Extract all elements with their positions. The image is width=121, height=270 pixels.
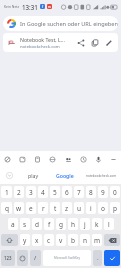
- staticText: Google: [56, 172, 74, 179]
- staticText: e: [29, 204, 33, 213]
- button[interactable]: Shift: [1, 234, 18, 246]
- button[interactable]: k: [92, 218, 102, 230]
- button[interactable]: notebookcheck.com: [81, 167, 121, 184]
- staticText: t: [54, 204, 57, 213]
- staticText: /: [34, 254, 37, 262]
- staticText: play: [28, 172, 39, 179]
- button[interactable]: Numbers: [1, 250, 15, 266]
- button[interactable]: Space: [43, 250, 91, 266]
- staticText: f: [42, 5, 44, 9]
- staticText: 8: [89, 188, 93, 197]
- staticText: a: [11, 220, 15, 229]
- staticText: z: [65, 204, 69, 213]
- staticText: Notebook Test, L...: [20, 36, 65, 43]
- button[interactable]: In Google suchen oder URL eingeben: [3, 16, 118, 31]
- button[interactable]: o: [98, 202, 108, 214]
- button[interactable]: 0: [110, 186, 120, 198]
- button[interactable]: Google: [49, 167, 81, 184]
- staticText: j: [84, 220, 86, 229]
- staticText: 3: [29, 188, 33, 197]
- button[interactable]: u: [74, 202, 84, 214]
- button[interactable]: e: [26, 202, 36, 214]
- staticText: q: [5, 204, 9, 213]
- staticText: s: [23, 220, 27, 229]
- button[interactable]: b: [68, 234, 78, 246]
- staticText: 0: [113, 188, 117, 197]
- staticText: y: [23, 236, 27, 245]
- button[interactable]: i: [86, 202, 96, 214]
- button[interactable]: play: [18, 167, 49, 184]
- button[interactable]: Copy: [89, 37, 101, 49]
- staticText: l: [108, 220, 110, 229]
- staticText: m: [48, 5, 51, 9]
- staticText: 7: [77, 188, 81, 197]
- button[interactable]: Edit: [103, 37, 115, 49]
- button[interactable]: r: [38, 202, 48, 214]
- button[interactable]: Mic: [93, 154, 104, 165]
- staticText: o: [101, 204, 105, 213]
- button[interactable]: 4: [38, 186, 48, 198]
- button[interactable]: Share: [75, 37, 87, 49]
- staticText: m: [94, 236, 101, 245]
- staticText: notebookcheck.com: [20, 44, 60, 50]
- button[interactable]: Search: [63, 154, 74, 165]
- button[interactable]: p: [110, 202, 120, 214]
- button[interactable]: 1: [1, 186, 12, 198]
- button[interactable]: Settings: [78, 154, 89, 165]
- button[interactable]: s: [20, 218, 30, 230]
- staticText: b: [71, 236, 75, 245]
- button[interactable]: Expand: [0, 167, 18, 184]
- staticText: 9: [101, 188, 105, 197]
- button[interactable]: Enter: [104, 250, 120, 266]
- button[interactable]: q: [1, 202, 12, 214]
- button[interactable]: Slash: [30, 250, 41, 266]
- button[interactable]: c: [44, 234, 54, 246]
- button[interactable]: 3: [26, 186, 36, 198]
- button[interactable]: 7: [74, 186, 84, 198]
- button[interactable]: f: [44, 218, 54, 230]
- staticText: f: [48, 220, 51, 229]
- staticText: 2: [17, 188, 21, 197]
- staticText: .: [97, 254, 99, 262]
- button[interactable]: v: [56, 234, 66, 246]
- button[interactable]: More: [108, 154, 119, 165]
- button[interactable]: 6: [62, 186, 72, 198]
- button[interactable]: h: [68, 218, 78, 230]
- button[interactable]: m: [92, 234, 102, 246]
- button[interactable]: j: [80, 218, 90, 230]
- button[interactable]: l: [104, 218, 114, 230]
- staticText: 6: [65, 188, 69, 197]
- button[interactable]: Period: [93, 250, 102, 266]
- button[interactable]: x: [32, 234, 42, 246]
- staticText: w: [16, 204, 22, 213]
- button[interactable]: a: [8, 218, 18, 230]
- button[interactable]: 8: [86, 186, 96, 198]
- button[interactable]: Notebook Test, L...: [3, 33, 118, 52]
- staticText: k: [95, 220, 99, 229]
- staticText: u: [77, 204, 82, 213]
- staticText: c: [47, 236, 51, 245]
- button[interactable]: Clipboard: [2, 154, 13, 165]
- button[interactable]: t: [50, 202, 60, 214]
- button[interactable]: y: [20, 234, 30, 246]
- button[interactable]: Backspace: [104, 234, 120, 246]
- button[interactable]: 2: [14, 186, 24, 198]
- button[interactable]: Translate: [47, 154, 58, 165]
- staticText: Microsoft SwiftKey: [54, 256, 80, 260]
- staticText: n: [83, 236, 88, 245]
- button[interactable]: d: [32, 218, 42, 230]
- staticText: 4: [41, 188, 45, 197]
- staticText: v: [59, 236, 63, 245]
- button[interactable]: 5: [50, 186, 60, 198]
- button[interactable]: n: [80, 234, 90, 246]
- staticText: d: [35, 220, 39, 229]
- button[interactable]: z: [62, 202, 72, 214]
- button[interactable]: Sticker: [17, 154, 28, 165]
- button[interactable]: w: [14, 202, 24, 214]
- button[interactable]: g: [56, 218, 66, 230]
- button[interactable]: 9: [98, 186, 108, 198]
- staticText: 1: [5, 188, 9, 197]
- button[interactable]: Emoji: [17, 250, 28, 266]
- staticText: Kein Netz: [4, 4, 20, 9]
- button[interactable]: Themes: [32, 154, 43, 165]
